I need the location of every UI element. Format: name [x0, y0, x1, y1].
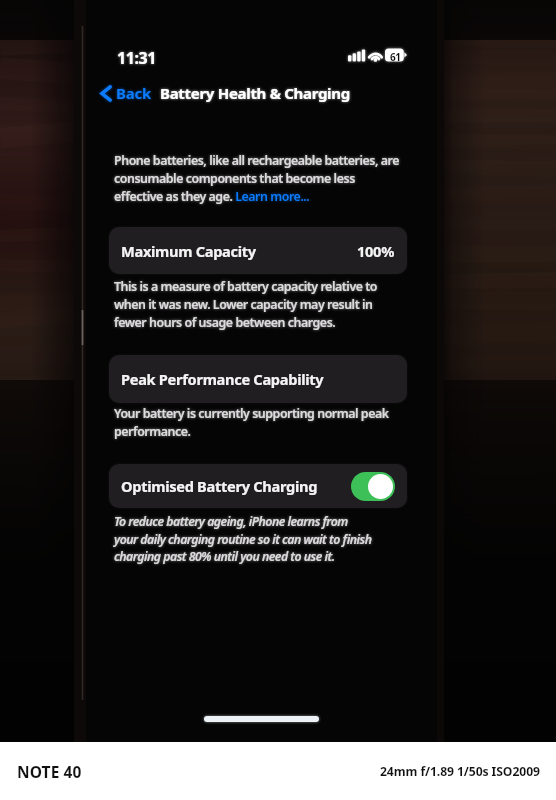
staticText: 61 [390, 50, 401, 64]
staticText: 11:31 [117, 47, 157, 69]
staticText: Phone batteries, like all rechargeable b… [114, 152, 400, 204]
staticText: This is a measure of battery capacity re… [114, 278, 400, 330]
staticText: Back [116, 83, 152, 103]
staticText: Peak Performance Capability [121, 369, 324, 389]
staticText: 61 [390, 50, 401, 64]
staticText: 11:31 [117, 47, 157, 69]
staticText: 100% [357, 241, 395, 261]
staticText: 100% [357, 241, 395, 261]
button[interactable]: Optimised Battery Charging [109, 464, 407, 508]
staticText: To reduce battery ageing, iPhone learns … [114, 513, 373, 564]
button[interactable]: Back [86, 81, 155, 105]
staticText: 24mm f/1.89 1/50s ISO2009 [380, 763, 540, 780]
staticText: Back [116, 83, 152, 103]
staticText: Maximum Capacity [121, 241, 256, 261]
staticText: Your battery is currently supporting nor… [114, 405, 400, 439]
button[interactable]: Optimised Battery Charging [351, 472, 395, 501]
staticText: Phone batteries, like all rechargeable b… [114, 152, 400, 204]
button[interactable]: Optimised Battery Charging [109, 464, 407, 508]
button[interactable]: Back [86, 81, 155, 105]
staticText: This is a measure of battery capacity re… [114, 278, 400, 330]
staticText: Optimised Battery Charging [121, 476, 318, 496]
staticText: Optimised Battery Charging [121, 476, 318, 496]
staticText: NOTE 40 [17, 761, 82, 782]
staticText: Your battery is currently supporting nor… [114, 405, 400, 439]
button[interactable]: Optimised Battery Charging [351, 472, 395, 501]
button[interactable]: Peak Performance Capability [109, 355, 407, 403]
button[interactable]: Peak Performance Capability [109, 355, 407, 403]
staticText: Maximum Capacity [121, 241, 256, 261]
button[interactable]: Maximum Capacity [109, 227, 407, 274]
staticText: Battery Health & Charging [160, 83, 350, 103]
staticText: To reduce battery ageing, iPhone learns … [114, 513, 373, 564]
staticText: Peak Performance Capability [121, 369, 324, 389]
staticText: Battery Health & Charging [160, 83, 350, 103]
button[interactable]: Maximum Capacity [109, 227, 407, 274]
